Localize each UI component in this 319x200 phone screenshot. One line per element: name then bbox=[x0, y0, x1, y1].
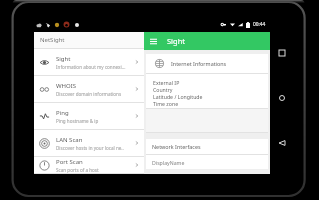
staticText: Ping hostname & ip bbox=[56, 118, 99, 124]
staticText: Scan ports of a host bbox=[56, 167, 99, 173]
staticText: Information about my connexi... bbox=[56, 64, 126, 70]
button[interactable]: Port Scan bbox=[34, 157, 144, 173]
staticText: LAN Scan bbox=[56, 136, 83, 144]
staticText: Country bbox=[153, 86, 173, 93]
button[interactable]: Internet Informations bbox=[155, 54, 268, 73]
button[interactable]: LAN Scan bbox=[34, 130, 144, 156]
staticText: 00:44 bbox=[253, 21, 266, 28]
staticText: Network Interfaces bbox=[152, 143, 201, 150]
staticText: Ping bbox=[56, 109, 69, 117]
staticText: Sight bbox=[167, 36, 186, 46]
button[interactable]: Ping bbox=[34, 103, 144, 129]
button[interactable]: Home bbox=[276, 92, 288, 104]
button[interactable]: Open navigation menu bbox=[149, 37, 158, 46]
staticText: Latitude / Longitude bbox=[153, 93, 203, 100]
staticText: External IP bbox=[153, 79, 180, 86]
staticText: Discover hosts in your local ne.. bbox=[56, 145, 124, 151]
button[interactable]: DisplayName bbox=[152, 155, 268, 169]
button[interactable]: Recent apps bbox=[276, 47, 288, 59]
button[interactable]: Sight bbox=[34, 49, 144, 75]
staticText: DisplayName bbox=[152, 159, 185, 166]
button[interactable]: Network Interfaces bbox=[152, 139, 268, 154]
staticText: NetSight bbox=[40, 36, 65, 44]
button[interactable]: Back bbox=[276, 137, 288, 149]
staticText: Discover domain informations bbox=[56, 91, 122, 97]
staticText: Sight bbox=[56, 55, 71, 63]
staticText: Internet Informations bbox=[171, 60, 227, 67]
staticText: Port Scan bbox=[56, 158, 83, 166]
staticText: Time zone bbox=[153, 100, 179, 107]
staticText: WHOIS bbox=[56, 82, 77, 90]
button[interactable]: WHOIS bbox=[34, 76, 144, 102]
